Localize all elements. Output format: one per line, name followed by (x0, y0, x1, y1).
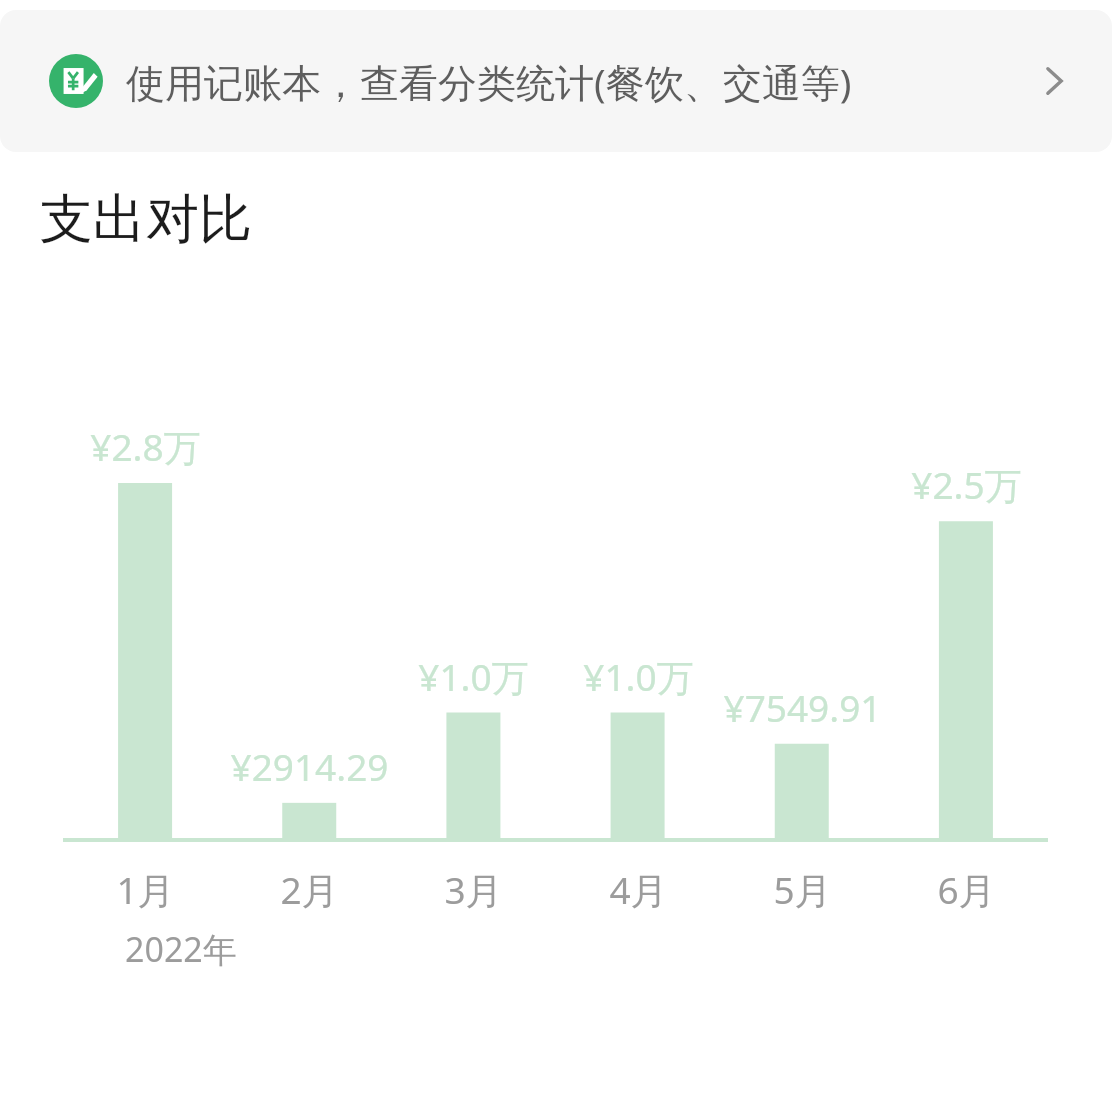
staticText: ¥7549.91 (723, 682, 882, 732)
staticText: 使用记账本，查看分类统计(餐饮、交通等) (126, 55, 852, 108)
staticText: ¥1.0万 (418, 651, 529, 702)
staticText: 2022年 (125, 926, 237, 972)
staticText: ¥2.5万 (911, 459, 1022, 510)
staticText: ¥1.0万 (583, 651, 694, 702)
button[interactable]: 使用记账本，查看分类统计(餐饮、交通等) (0, 10, 1112, 152)
staticText: 5月 (773, 864, 832, 915)
staticText: 支出对比 (40, 186, 252, 253)
staticText: 1月 (116, 864, 175, 915)
staticText: 4月 (609, 864, 668, 915)
staticText: 2月 (280, 864, 339, 915)
staticText: ¥2914.29 (230, 741, 389, 791)
staticText: 3月 (444, 864, 503, 915)
staticText: 6月 (937, 864, 996, 915)
button[interactable]: 查看记账本分类统计 (1016, 43, 1092, 119)
staticText: ¥2.8万 (90, 421, 201, 472)
